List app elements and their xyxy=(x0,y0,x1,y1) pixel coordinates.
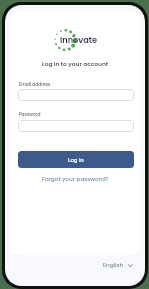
staticText: Password xyxy=(19,111,41,117)
button[interactable] xyxy=(18,120,134,132)
button[interactable]: Log in xyxy=(18,151,134,168)
staticText: English xyxy=(103,261,124,269)
button[interactable]: English xyxy=(101,259,135,271)
staticText: Log in to your account xyxy=(42,60,109,68)
button[interactable]: Forgot your password? xyxy=(41,174,109,184)
button[interactable] xyxy=(18,89,134,101)
other: Change language xyxy=(128,263,133,268)
staticText: Forgot your password? xyxy=(42,175,108,183)
staticText: Innovate xyxy=(60,34,98,45)
staticText: Email address xyxy=(19,81,51,87)
staticText: Log in xyxy=(68,156,84,164)
